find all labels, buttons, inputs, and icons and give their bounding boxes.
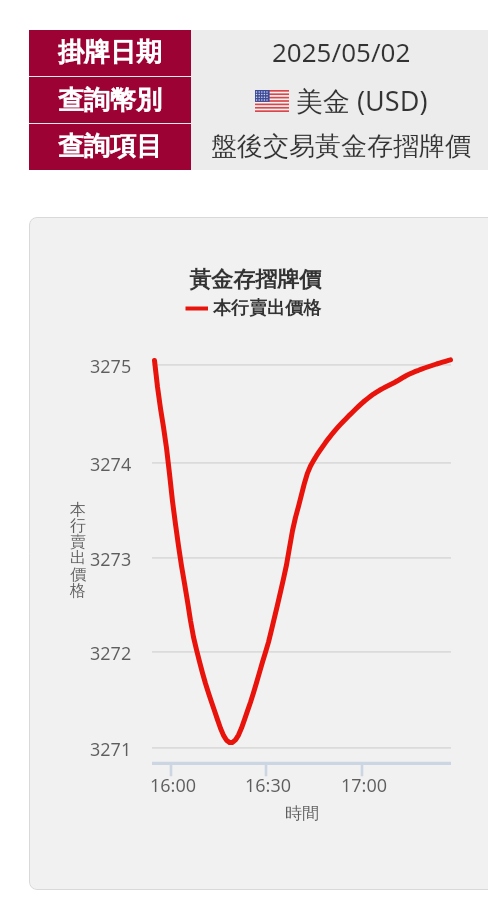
staticText: 3273 — [90, 547, 132, 572]
staticText: 3274 — [90, 452, 132, 477]
staticText: 查詢幣別 — [58, 84, 162, 117]
staticText: 17:00 — [341, 773, 388, 798]
staticText: 行 — [70, 516, 86, 536]
button[interactable]: 掛牌日期 — [29, 30, 488, 76]
staticText: 價 — [70, 565, 86, 585]
staticText: 本行賣出價格 — [213, 297, 321, 320]
staticText: 3272 — [90, 641, 132, 666]
staticText: 美金 (USD) — [296, 82, 428, 119]
staticText: 掛牌日期 — [58, 36, 162, 69]
staticText: 3271 — [90, 737, 132, 762]
staticText: 本 — [70, 500, 86, 520]
staticText: 格 — [70, 581, 86, 601]
staticText: 3275 — [90, 354, 132, 379]
staticText: 出 — [70, 548, 86, 568]
staticText: 16:00 — [150, 773, 197, 798]
button[interactable]: 查詢幣別 — [29, 77, 488, 123]
staticText: 黃金存摺牌價 — [189, 266, 321, 294]
staticText: 2025/05/02 — [272, 34, 411, 69]
button[interactable]: 查詢項目 — [29, 124, 488, 170]
staticText: 查詢項目 — [58, 130, 162, 163]
staticText: 時間 — [285, 803, 319, 824]
staticText: 賣 — [70, 532, 86, 552]
staticText: 盤後交易黃金存摺牌價 — [211, 130, 471, 163]
staticText: 16:30 — [245, 773, 292, 798]
